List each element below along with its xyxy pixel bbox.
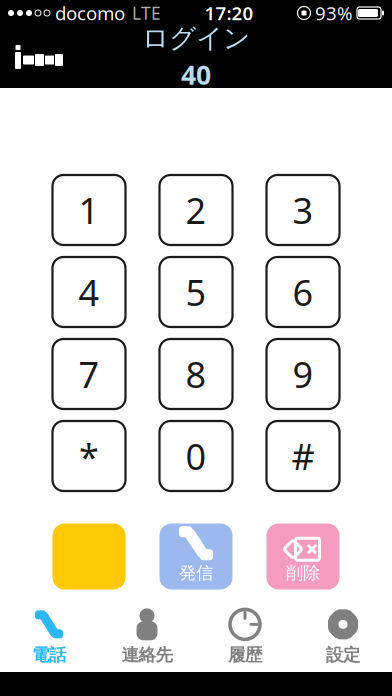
staticText: 履歴 [228, 644, 262, 666]
staticText: 9 [292, 350, 313, 398]
staticText: docomo [55, 1, 125, 25]
staticText: ログイン [142, 22, 250, 55]
staticText: 削除 [286, 562, 320, 583]
button[interactable]: 2 [159, 175, 232, 245]
staticText: 連絡先 [121, 644, 172, 666]
button[interactable]: 未設定 [52, 523, 125, 589]
button[interactable]: 5 [159, 257, 232, 327]
staticText: 7 [78, 350, 99, 398]
button[interactable]: 連絡先 [98, 600, 196, 672]
button[interactable]: 発信 [159, 523, 232, 589]
staticText: 電話 [32, 644, 66, 666]
staticText: 93% [315, 1, 353, 25]
button[interactable]: 7 [52, 339, 125, 409]
button[interactable]: 設定 [294, 600, 392, 672]
staticText: LTE [132, 1, 161, 24]
button[interactable]: 0 [159, 421, 232, 491]
staticText: 4 [78, 268, 99, 316]
button[interactable]: # [266, 421, 339, 491]
staticText: 40 [181, 57, 211, 92]
staticText: 2 [185, 186, 206, 234]
staticText: # [291, 432, 314, 480]
staticText: * [79, 432, 99, 480]
staticText: 5 [185, 268, 206, 316]
button[interactable]: 3 [266, 175, 339, 245]
staticText: 6 [292, 268, 313, 316]
staticText: 0 [185, 432, 206, 480]
button[interactable]: 9 [266, 339, 339, 409]
staticText: 3 [292, 186, 313, 234]
button[interactable]: 削除 [266, 523, 339, 589]
staticText: 1 [78, 186, 99, 234]
button[interactable]: 6 [266, 257, 339, 327]
button[interactable]: 履歴 [196, 600, 294, 672]
staticText: 設定 [326, 644, 360, 666]
button[interactable]: 8 [159, 339, 232, 409]
staticText: 17:20 [204, 1, 253, 25]
staticText: 発信 [179, 562, 213, 583]
button[interactable]: 1 [52, 175, 125, 245]
button[interactable]: * [52, 421, 125, 491]
button[interactable]: 電話 [0, 600, 98, 672]
button[interactable]: 4 [52, 257, 125, 327]
staticText: 8 [185, 350, 206, 398]
